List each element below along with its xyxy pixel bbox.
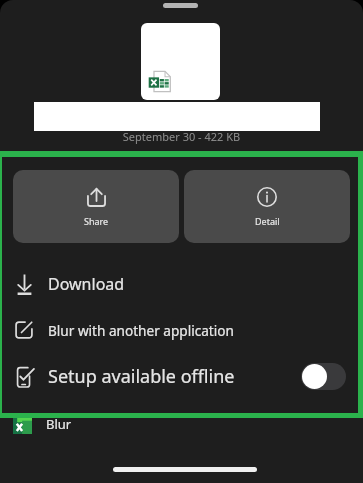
staticText: Blur <box>46 415 72 433</box>
staticText: Share <box>84 215 109 227</box>
staticText: September 30 - 422 KB <box>0 129 363 144</box>
button[interactable]: Share <box>13 170 179 243</box>
button[interactable]: Toggle available offline <box>301 363 346 390</box>
button[interactable]: Download <box>0 261 363 307</box>
button[interactable]: Blur <box>13 412 72 436</box>
button[interactable]: Setup available offline <box>0 353 363 399</box>
staticText: Blur with another application <box>48 321 234 340</box>
staticText: Setup available offline <box>48 364 301 389</box>
staticText: Download <box>48 273 125 295</box>
button[interactable]: Detail <box>184 170 350 243</box>
button[interactable]: Blur with another application <box>0 307 363 353</box>
staticText: Detail <box>255 215 280 227</box>
